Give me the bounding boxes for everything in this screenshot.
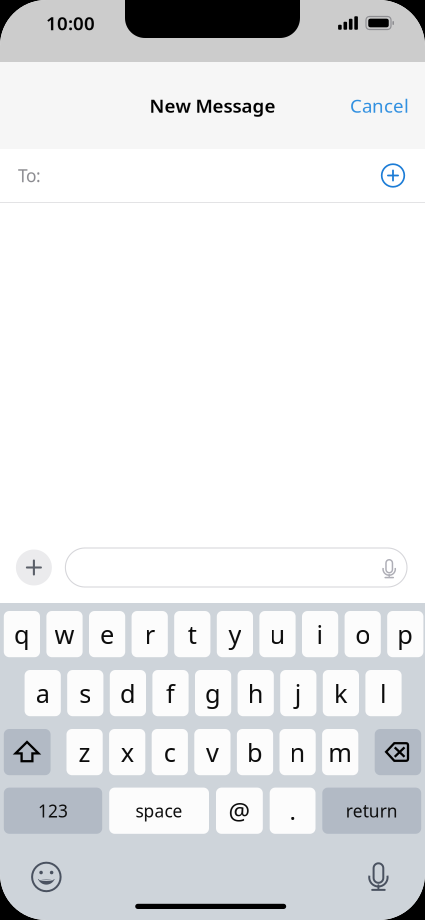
staticText: w	[54, 617, 74, 651]
button[interactable]: m	[322, 729, 358, 775]
button[interactable]: u	[259, 611, 296, 657]
button[interactable]: d	[110, 670, 146, 716]
button[interactable]: Add attachment	[16, 549, 52, 585]
button[interactable]: Dictate	[358, 850, 399, 900]
staticText: v	[206, 735, 219, 769]
staticText: f	[166, 676, 175, 710]
staticText: y	[228, 617, 241, 651]
button[interactable]: e	[89, 611, 125, 657]
button[interactable]: .	[270, 788, 315, 834]
button[interactable]: 123	[4, 788, 102, 834]
staticText: k	[334, 676, 348, 710]
staticText: p	[397, 617, 413, 651]
staticText: To:	[18, 164, 41, 187]
staticText: 10:00	[46, 11, 95, 35]
staticText: return	[346, 799, 398, 822]
button[interactable]: l	[365, 670, 402, 716]
staticText: l	[380, 676, 387, 710]
staticText: z	[79, 735, 91, 769]
button[interactable]: b	[237, 729, 273, 775]
staticText: c	[164, 735, 176, 769]
button[interactable]: i	[302, 611, 338, 657]
button[interactable]: s	[67, 670, 103, 716]
staticText: d	[120, 676, 136, 710]
staticText: h	[248, 676, 264, 710]
button[interactable]: Cancel	[332, 81, 425, 130]
button[interactable]: q	[4, 611, 40, 657]
button[interactable]: v	[194, 729, 230, 775]
staticText: o	[355, 617, 370, 651]
button[interactable]: g	[195, 670, 231, 716]
button[interactable]: x	[109, 729, 145, 775]
staticText: q	[14, 617, 30, 651]
staticText: b	[247, 735, 263, 769]
button[interactable]: t	[174, 611, 210, 657]
button[interactable]: n	[279, 729, 316, 775]
button[interactable]: c	[152, 729, 188, 775]
button[interactable]: Delete	[375, 729, 421, 775]
staticText: s	[79, 676, 91, 710]
staticText: n	[290, 735, 306, 769]
staticText: a	[36, 676, 50, 710]
button[interactable]: p	[387, 611, 423, 657]
staticText: e	[100, 617, 114, 651]
staticText: New Message	[149, 93, 275, 118]
staticText: space	[136, 799, 183, 822]
button[interactable]: o	[345, 611, 381, 657]
button[interactable]: h	[238, 670, 274, 716]
button[interactable]: Emoji keyboard	[20, 851, 73, 903]
button[interactable]: @	[216, 788, 263, 834]
button[interactable]: k	[323, 670, 359, 716]
staticText: m	[328, 735, 352, 769]
button[interactable]: f	[152, 670, 189, 716]
staticText: 123	[38, 799, 68, 822]
staticText: x	[121, 735, 134, 769]
staticText: j	[295, 676, 302, 710]
button[interactable]: space	[109, 788, 209, 834]
staticText: .	[290, 795, 296, 827]
staticText: r	[145, 617, 155, 651]
staticText: i	[317, 617, 324, 651]
button[interactable]: j	[280, 670, 316, 716]
button[interactable]: z	[66, 729, 103, 775]
button[interactable]: w	[46, 611, 83, 657]
button[interactable]: return	[322, 788, 421, 834]
staticText: u	[269, 617, 285, 651]
staticText: Cancel	[350, 93, 409, 118]
staticText: t	[188, 617, 197, 651]
button[interactable]: a	[25, 670, 61, 716]
button[interactable]: Add contact	[373, 155, 413, 195]
button[interactable]: r	[132, 611, 168, 657]
staticText: @	[228, 795, 250, 827]
staticText: g	[205, 676, 221, 710]
button[interactable]: Shift	[4, 729, 51, 775]
button[interactable]: y	[217, 611, 253, 657]
